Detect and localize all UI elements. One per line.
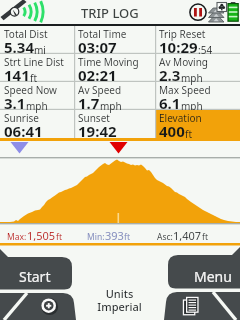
staticText: ft (124, 231, 130, 243)
staticText: mph (100, 99, 122, 113)
staticText: 1,505 (27, 228, 56, 243)
staticText: 10:29 (159, 37, 198, 57)
staticText: Elevation (159, 111, 202, 125)
staticText: :54 (198, 43, 213, 57)
staticText: 393 (105, 228, 124, 243)
staticText: 1.7 (78, 93, 100, 113)
staticText: Speed Now (4, 83, 57, 97)
staticText: Max: (7, 231, 27, 243)
staticText: 400 (159, 121, 185, 141)
staticText: Av Moving (159, 55, 208, 69)
button[interactable]: Max Speed (155, 82, 240, 110)
button[interactable]: Speed Now (0, 82, 74, 110)
staticText: Time Moving (78, 55, 139, 69)
staticText: 02:21 (78, 65, 117, 85)
staticText: 03:07 (78, 37, 117, 57)
staticText: ft (185, 127, 193, 141)
staticText: TRIP LOG (81, 4, 139, 22)
staticText: ft (202, 231, 208, 243)
staticText: mph (181, 99, 203, 113)
staticText: Asc: (157, 231, 173, 243)
staticText: mi (34, 43, 46, 57)
staticText: 2.3 (159, 65, 181, 85)
button[interactable]: Record (0, 292, 76, 320)
staticText: 5.34 (4, 37, 34, 57)
staticText: ft (56, 231, 62, 243)
button[interactable]: Elevation (155, 110, 240, 138)
staticText: ft (30, 71, 38, 85)
staticText: 06:41 (4, 121, 43, 141)
button[interactable]: Time Moving (74, 54, 155, 82)
staticText: mph (181, 71, 203, 85)
staticText: 1,407 (173, 228, 202, 243)
button[interactable]: Pause (188, 2, 208, 24)
staticText: 3.1 (4, 93, 26, 113)
staticText: 141 (4, 65, 30, 85)
staticText: 6.1 (159, 93, 181, 113)
button[interactable]: Av Speed (74, 82, 155, 110)
staticText: 19:42 (78, 121, 117, 141)
staticText: Min: (87, 231, 105, 243)
staticText: Sunrise (4, 111, 39, 125)
button[interactable]: Sunset (74, 110, 155, 138)
button[interactable]: Av Moving (155, 54, 240, 82)
staticText: Av Speed (78, 83, 122, 97)
staticText: Menu (194, 267, 232, 286)
button[interactable]: Total Time (74, 26, 155, 54)
button[interactable]: Start (0, 249, 72, 290)
staticText: Total Time (78, 27, 127, 41)
staticText: Max Speed (159, 83, 211, 97)
button[interactable]: Total Dist (0, 26, 74, 54)
staticText: Total Dist (4, 27, 48, 41)
button[interactable]: Sunrise (0, 110, 74, 138)
staticText: Strt Line Dist (4, 55, 64, 69)
button[interactable]: Trip logs (164, 292, 240, 320)
staticText: Sunset (78, 111, 110, 125)
button[interactable]: Trip Reset (155, 26, 240, 54)
button[interactable]: Strt Line Dist (0, 54, 74, 82)
staticText: mph (26, 99, 48, 113)
button[interactable]: Menu (168, 247, 240, 288)
staticText: Units Imperial (97, 286, 142, 314)
staticText: Trip Reset (159, 27, 206, 41)
staticText: Start (19, 267, 51, 286)
